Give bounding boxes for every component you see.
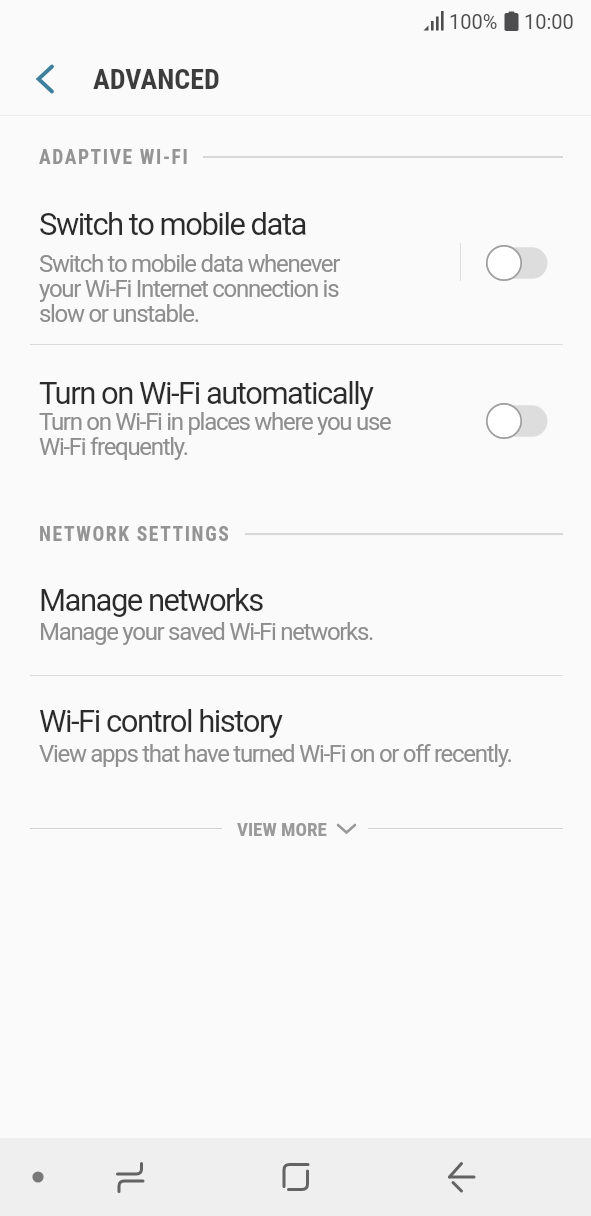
button[interactable]: Wi-Fi control history (0, 676, 591, 790)
button[interactable]: Manage networks (0, 560, 591, 675)
staticText: ADAPTIVE WI-FI (39, 146, 190, 169)
button[interactable] (24, 56, 64, 102)
staticText: ADVANCED (93, 63, 220, 96)
button[interactable] (437, 1153, 485, 1201)
button[interactable] (106, 1153, 154, 1201)
staticText: View apps that have turned Wi-Fi on or o… (39, 740, 512, 768)
staticText: Switch to mobile data whenever your Wi-F… (39, 250, 340, 328)
staticText: Turn on Wi-Fi in places where you use Wi… (39, 408, 391, 461)
button[interactable]: VIEW MORE (0, 800, 591, 858)
staticText: Switch to mobile data (39, 206, 306, 242)
button[interactable]: Turn on Wi-Fi automatically (0, 355, 591, 480)
staticText: Manage networks (39, 582, 263, 618)
staticText: NETWORK SETTINGS (39, 523, 231, 546)
staticText: Wi-Fi control history (39, 703, 282, 739)
staticText: VIEW MORE (237, 818, 327, 840)
button[interactable] (272, 1153, 320, 1201)
staticText: Manage your saved Wi-Fi networks. (39, 618, 374, 646)
button[interactable] (14, 1153, 62, 1201)
staticText: Turn on Wi-Fi automatically (39, 375, 373, 411)
button[interactable] (478, 238, 556, 288)
staticText: 100% (449, 10, 498, 33)
button[interactable]: Switch to mobile data (0, 190, 591, 344)
button[interactable] (478, 396, 556, 446)
staticText: 10:00 (524, 10, 574, 33)
